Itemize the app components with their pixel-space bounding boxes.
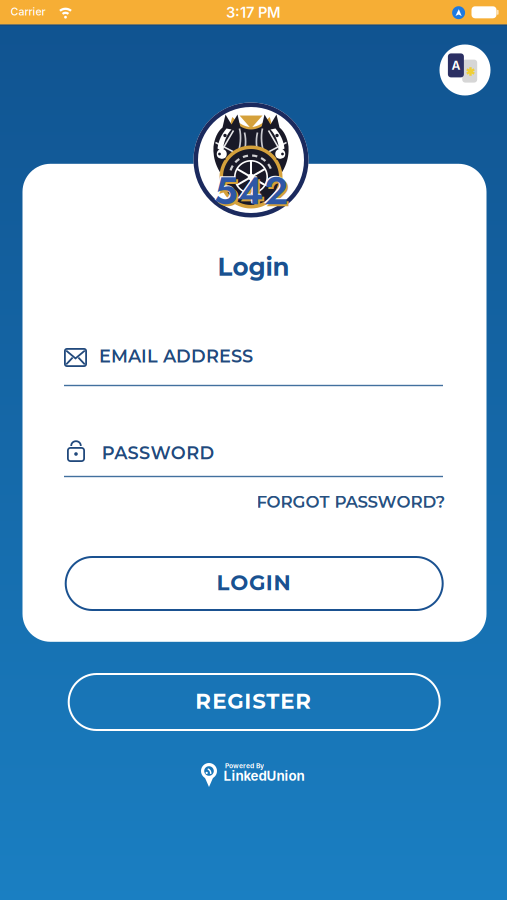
staticText: REGISTER [195, 688, 311, 714]
staticText: EMAIL ADDRESS [99, 345, 253, 367]
staticText: PASSWORD [102, 442, 215, 464]
staticText: LinkedUnion [224, 768, 305, 784]
staticText: Carrier [10, 5, 45, 18]
staticText: FORGOT PASSWORD? [256, 492, 445, 512]
button[interactable]: Translate [439, 44, 490, 95]
staticText: 542 [213, 162, 287, 218]
staticText: A [451, 58, 460, 72]
button[interactable]: Password [64, 429, 443, 477]
staticText: Powered By [225, 762, 264, 770]
button[interactable]: Email address [64, 338, 443, 386]
staticText: 542 [214, 163, 288, 219]
staticText: Login [217, 252, 289, 282]
staticText: 542 [216, 165, 290, 221]
button[interactable]: LOGIN [65, 556, 444, 611]
staticText: LOGIN [216, 569, 290, 595]
button[interactable]: REGISTER [68, 673, 441, 731]
button[interactable]: FORGOT PASSWORD? [185, 493, 445, 511]
staticText: 3:17 PM [226, 4, 281, 21]
